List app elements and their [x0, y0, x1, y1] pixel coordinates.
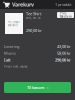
button[interactable]: Til kassen › — [4, 82, 71, 93]
staticText: Til kassen › — [27, 85, 48, 90]
staticText: Plus Medlem — [60, 11, 71, 19]
staticText: 58,00 kr — [57, 50, 71, 56]
staticText: I alt — [4, 57, 11, 63]
button[interactable]: Cart — [0, 0, 12, 9]
staticText: Priser inkl. moms — [4, 65, 27, 68]
staticText: 290,00 kr — [26, 28, 42, 33]
staticText: Tee Shirt — [26, 11, 41, 16]
staticText: 290,00 kr — [55, 57, 71, 63]
staticText: Levering — [4, 44, 19, 49]
staticText: Moms — [4, 50, 16, 56]
staticText: sort, str. M — [26, 16, 40, 20]
staticText: Varekurv — [12, 1, 34, 8]
staticText: No image available — [7, 20, 20, 27]
staticText: 1 produkt — [55, 2, 71, 7]
staticText: 43,00 kr — [57, 44, 71, 49]
